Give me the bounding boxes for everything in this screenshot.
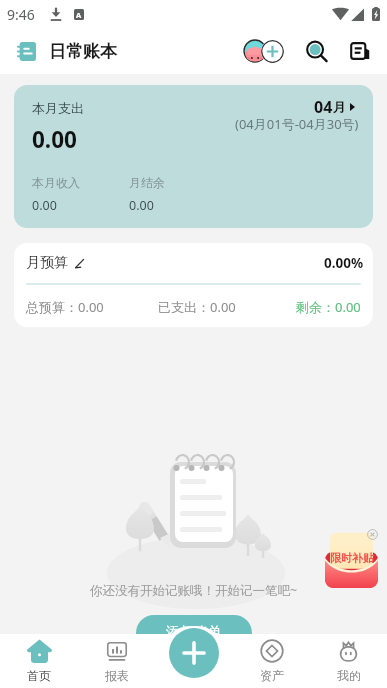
staticText: 剩余：0.00: [296, 298, 361, 316]
button[interactable]: Bills: [347, 38, 373, 64]
staticText: 总预算：0.00: [26, 298, 104, 316]
button[interactable]: Search: [304, 38, 330, 64]
staticText: 月: [333, 99, 346, 115]
staticText: A: [76, 10, 82, 20]
staticText: 本月支出: [32, 100, 84, 116]
button[interactable]: Close: [367, 529, 378, 540]
staticText: 限时补贴: [330, 551, 374, 565]
button[interactable]: 添加账单: [136, 615, 252, 651]
button[interactable]: 首页: [0, 634, 78, 688]
button[interactable]: Limited time subsidy: [325, 542, 378, 588]
staticText: 04: [314, 96, 333, 118]
button[interactable]: Switch account book: [243, 38, 284, 64]
staticText: 日常账本: [49, 41, 117, 62]
staticText: 0.00: [129, 197, 154, 214]
staticText: (04月01号-04月30号): [235, 115, 359, 133]
staticText: 资产: [260, 668, 284, 683]
button[interactable]: 资产: [233, 634, 310, 688]
staticText: 你还没有开始记账哦！开始记一笔吧~: [90, 582, 298, 599]
button[interactable]: Add record: [169, 628, 219, 678]
button[interactable]: 日常账本: [17, 41, 117, 62]
button[interactable]: 月预算: [14, 243, 373, 327]
staticText: 0.00: [32, 124, 77, 155]
staticText: 0.00%: [324, 254, 364, 272]
staticText: 添加账单: [166, 624, 222, 642]
staticText: 月预算: [26, 254, 68, 272]
staticText: 0.00: [32, 197, 57, 214]
button[interactable]: 报表: [78, 634, 156, 688]
button[interactable]: 本月支出: [14, 85, 373, 228]
staticText: 我的: [337, 668, 361, 683]
staticText: 本月收入: [32, 175, 80, 190]
staticText: 报表: [105, 668, 129, 683]
button[interactable]: 我的: [310, 634, 387, 688]
staticText: 首页: [27, 668, 51, 683]
staticText: 已支出：0.00: [158, 298, 236, 316]
staticText: 9:46: [7, 5, 35, 24]
staticText: 月结余: [129, 175, 165, 190]
